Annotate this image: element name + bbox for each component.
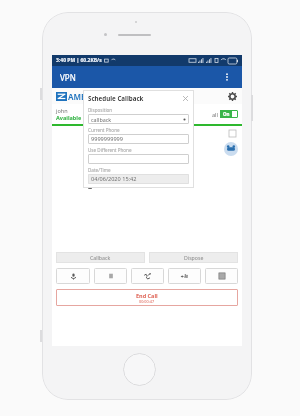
button[interactable]: Callback xyxy=(56,252,145,263)
staticText: 04/06/2020 15:42 xyxy=(91,175,137,183)
staticText: john xyxy=(56,107,68,114)
button[interactable]: 04/06/2020 15:42 xyxy=(88,174,189,184)
staticText: Schedule Callback xyxy=(88,94,144,102)
staticText: Use Different Phone xyxy=(88,147,132,153)
staticText: End Call xyxy=(136,292,158,299)
button[interactable]: Close xyxy=(181,94,189,102)
button[interactable]: End Call xyxy=(56,289,238,306)
button[interactable]: Phone xyxy=(224,142,238,156)
button[interactable]: AMEYO xyxy=(56,91,97,102)
staticText: Dispose xyxy=(184,254,204,261)
button[interactable]: Conference xyxy=(168,268,201,284)
button[interactable]: Mute xyxy=(56,268,90,284)
button[interactable]: On xyxy=(220,110,238,118)
staticText: Disposition xyxy=(88,107,113,113)
staticText: all xyxy=(212,111,218,118)
button[interactable]: callback xyxy=(88,114,189,124)
button[interactable] xyxy=(88,154,189,164)
staticText: 9999999999 xyxy=(91,135,123,143)
staticText: Callback xyxy=(90,254,111,261)
staticText: AMEYO xyxy=(68,91,97,102)
button[interactable]: Hold xyxy=(94,268,127,284)
staticText: Current Phone xyxy=(88,127,120,133)
staticText: VPN xyxy=(60,72,76,83)
staticText: Date/Time xyxy=(88,167,111,173)
button[interactable]: More options xyxy=(220,70,234,84)
staticText: 3:40 PM | 60.2KB/s xyxy=(56,57,102,64)
button[interactable]: Transfer xyxy=(131,268,164,284)
staticText: callback xyxy=(91,116,112,123)
staticText: Available xyxy=(56,114,82,121)
button[interactable]: 9999999999 xyxy=(88,134,189,144)
button[interactable]: Dispose xyxy=(149,252,238,263)
staticText: On xyxy=(223,111,230,117)
button[interactable]: Keypad xyxy=(205,268,238,284)
button[interactable]: Settings xyxy=(226,90,238,102)
button[interactable]: Edit xyxy=(229,130,236,137)
staticText: 00:00:47 xyxy=(139,299,155,304)
